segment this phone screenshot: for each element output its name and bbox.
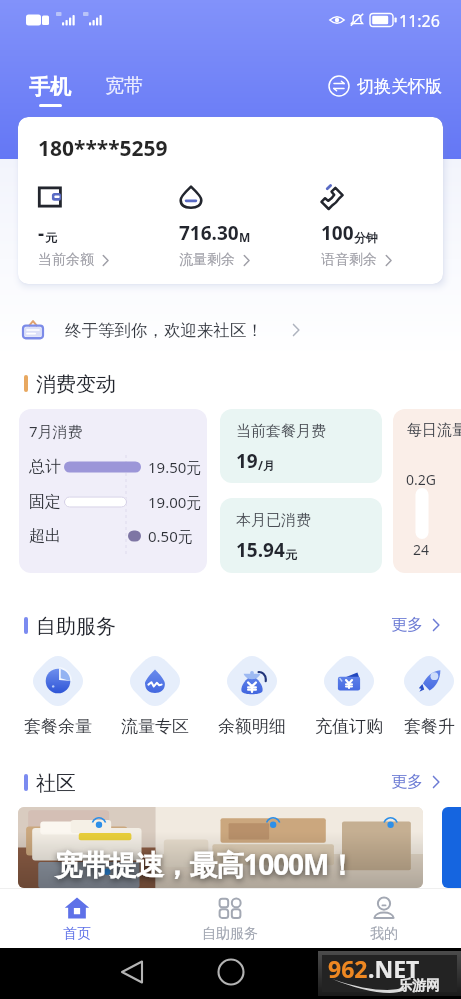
button[interactable]: - xyxy=(18,180,159,269)
button[interactable]: 套餐余量 xyxy=(9,650,106,737)
staticText: 每日流量 xyxy=(407,421,461,440)
staticText: 首页 xyxy=(63,925,91,943)
button[interactable]: 流量专区 xyxy=(106,650,203,737)
staticText: 962 xyxy=(328,953,368,984)
staticText: 流量剩余 xyxy=(179,251,235,269)
button[interactable]: 手机 xyxy=(24,71,76,110)
staticText: 充值订购 xyxy=(315,716,383,737)
staticText: 当前套餐月费 xyxy=(236,422,326,441)
button[interactable]: 更多 xyxy=(391,772,443,792)
staticText: 我的 xyxy=(370,925,398,943)
staticText: 消费变动 xyxy=(36,372,116,394)
staticText: 11:26 xyxy=(399,10,440,32)
staticText: 更多 xyxy=(391,615,423,635)
staticText: 固定 xyxy=(29,492,61,512)
staticText: 0.2G xyxy=(406,470,436,489)
staticText: 元 xyxy=(285,547,297,562)
button[interactable]: 首页 xyxy=(0,889,153,948)
button[interactable]: 7月消费 xyxy=(19,409,207,573)
staticText: 元 xyxy=(45,230,57,245)
staticText: 总计 xyxy=(29,457,61,477)
button[interactable]: 本月已消费 xyxy=(220,498,382,573)
button[interactable]: 自助服务 xyxy=(153,889,307,948)
button[interactable]: 每日流量 xyxy=(393,409,461,573)
staticText: 19 xyxy=(236,448,258,474)
staticText: 套餐余量 xyxy=(24,716,92,737)
button[interactable]: 宽带提速，最高1000M！ xyxy=(18,807,423,888)
button[interactable]: 100 xyxy=(301,180,443,269)
staticText: 终于等到你，欢迎来社区！ xyxy=(65,320,263,341)
button[interactable]: 切换关怀版 xyxy=(328,72,442,100)
staticText: 超出 xyxy=(29,526,61,546)
staticText: 语音剩余 xyxy=(321,251,377,269)
staticText: 自助服务 xyxy=(202,925,258,943)
button[interactable]: 716.30 xyxy=(159,180,301,269)
staticText: 手机 xyxy=(29,74,71,100)
staticText: 更多 xyxy=(391,772,423,792)
staticText: 180****5259 xyxy=(38,134,168,163)
button[interactable]: 套餐升 xyxy=(397,650,461,737)
staticText: 0.50元 xyxy=(148,526,193,546)
button[interactable]: 宽带 xyxy=(100,71,148,101)
button[interactable]: 当前套餐月费 xyxy=(220,409,382,483)
staticText: 套餐升 xyxy=(404,716,455,737)
staticText: 流量专区 xyxy=(121,716,189,737)
staticText: /月 xyxy=(258,457,275,473)
staticText: M xyxy=(239,229,251,245)
staticText: 本月已消费 xyxy=(236,511,311,530)
staticText: 716.30 xyxy=(179,220,239,246)
button[interactable]: 更多 xyxy=(391,615,443,635)
staticText: 自助服务 xyxy=(36,614,116,636)
staticText: 24 xyxy=(413,540,430,559)
staticText: .NET xyxy=(368,953,420,984)
staticText: 宽带提速，最高1000M！ xyxy=(55,845,356,883)
button[interactable]: 充值订购 xyxy=(300,650,397,737)
staticText: 15.94 xyxy=(236,537,285,563)
staticText: 余额明细 xyxy=(218,716,286,737)
staticText: 乐游网 xyxy=(398,977,440,995)
staticText: 19.00元 xyxy=(148,492,202,512)
staticText: 7月消费 xyxy=(29,421,83,441)
staticText: 社区 xyxy=(36,771,76,793)
button[interactable]: 我的 xyxy=(307,889,461,948)
staticText: 当前余额 xyxy=(38,251,94,269)
staticText: 宽带 xyxy=(105,74,143,98)
staticText: 100 xyxy=(321,220,354,246)
button[interactable]: 终于等到你，欢迎来社区！ xyxy=(18,314,443,346)
staticText: 分钟 xyxy=(354,230,378,245)
button[interactable]: 余额明细 xyxy=(203,650,300,737)
staticText: 切换关怀版 xyxy=(357,76,442,97)
staticText: - xyxy=(38,220,45,246)
staticText: 19.50元 xyxy=(148,457,202,477)
